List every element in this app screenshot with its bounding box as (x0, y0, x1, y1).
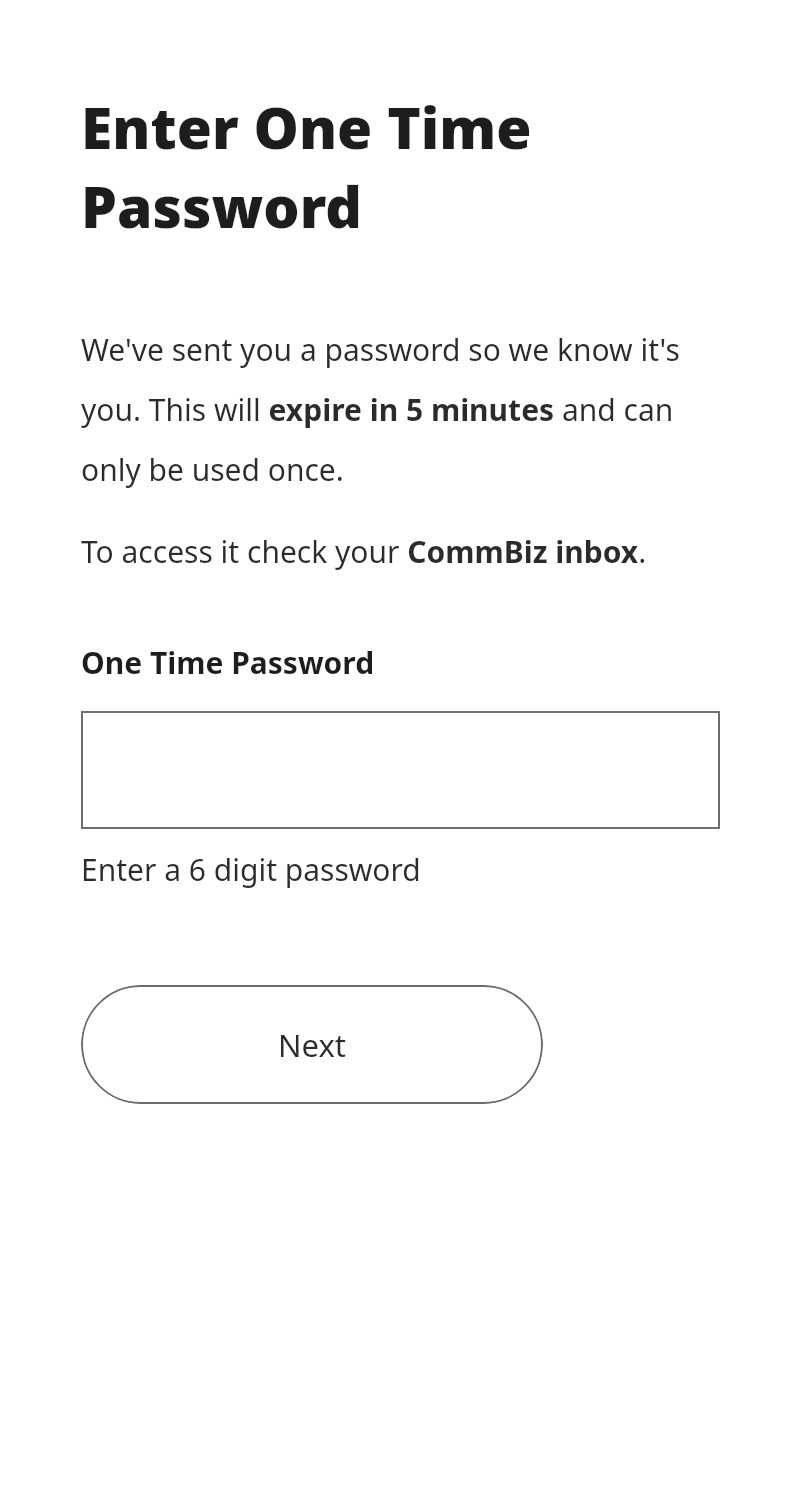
staticText: Next (278, 1024, 347, 1066)
staticText: Enter a 6 digit password (81, 849, 421, 890)
button[interactable]: One Time Password input field (81, 711, 720, 829)
staticText: Enter One Time Password (81, 88, 532, 245)
button[interactable]: Next (81, 985, 543, 1104)
staticText: To access it check your CommBiz inbox. (81, 531, 647, 572)
staticText: One Time Password (81, 642, 375, 683)
staticText: We've sent you a password so we know it'… (81, 329, 720, 490)
